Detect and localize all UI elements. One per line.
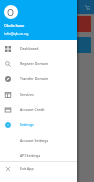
staticText: Obelix Isaac [4,23,25,28]
staticText: Dashboard [20,46,39,51]
staticText: Account Credit [20,107,45,112]
staticText: info@qlx.co.ug [4,31,29,36]
button[interactable]: API Settings [0,148,77,163]
button[interactable]: Services [0,87,77,102]
staticText: API Settings [20,153,41,158]
button[interactable]: Register Domain [0,56,77,71]
button[interactable]: Dashboard [0,41,77,56]
staticText: Transfer Domain [20,76,48,81]
staticText: Account Settings [20,138,49,143]
button[interactable]: Account Settings [0,133,77,148]
button[interactable]: Exit App [0,161,77,176]
staticText: O [7,6,15,18]
button[interactable]: Account Credit [0,102,77,117]
staticText: Register Domain [20,61,48,66]
staticText: Settings [20,122,34,127]
staticText: Exit App [20,166,34,171]
button[interactable]: Settings [0,117,77,132]
button[interactable]: Shopping cart [83,3,91,11]
button[interactable]: Transfer Domain [0,71,77,86]
staticText: Services [20,92,34,97]
